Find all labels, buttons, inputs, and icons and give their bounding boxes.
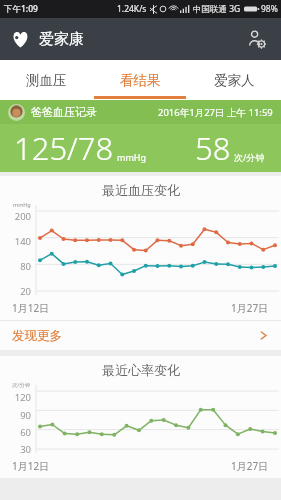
staticText: 125/78 xyxy=(14,127,114,169)
staticText: 2016年1月27日 上午 11:59 xyxy=(158,106,273,119)
staticText: 140 xyxy=(14,235,31,248)
staticText: 次/分钟 xyxy=(234,151,265,163)
button[interactable]: 测血压 xyxy=(0,60,93,100)
staticText: 1月12日 xyxy=(12,459,50,473)
staticText: mmHg xyxy=(117,151,147,163)
staticText: 90 xyxy=(20,409,31,422)
staticText: 58 xyxy=(195,127,231,169)
staticText: 120 xyxy=(14,391,31,404)
staticText: 60 xyxy=(20,426,31,439)
staticText: 爱家康 xyxy=(39,30,84,49)
staticText: 20 xyxy=(20,285,31,298)
staticText: 看结果 xyxy=(120,72,161,89)
staticText: 中国联通 3G xyxy=(193,3,241,15)
staticText: 爸爸血压记录 xyxy=(31,105,97,119)
staticText: 爱家人 xyxy=(214,72,255,89)
staticText: 发现更多 xyxy=(12,328,62,344)
staticText: 1月12日 xyxy=(12,301,50,315)
staticText: mmHg xyxy=(13,201,31,208)
staticText: 最近心率变化 xyxy=(102,362,180,378)
staticText: 80 xyxy=(20,260,31,273)
staticText: 30 xyxy=(20,443,31,456)
staticText: 1.24K/s xyxy=(117,3,147,15)
button[interactable]: 看结果 xyxy=(93,60,187,100)
staticText: 98% xyxy=(261,3,278,15)
button[interactable]: 发现更多 xyxy=(0,321,281,350)
staticText: 下午1:09 xyxy=(4,3,38,15)
staticText: 最近血压变化 xyxy=(102,182,180,198)
staticText: 测血压 xyxy=(26,72,67,89)
staticText: 200 xyxy=(14,210,31,223)
staticText: 1月27日 xyxy=(231,459,269,473)
button[interactable]: Account settings xyxy=(241,24,271,54)
staticText: 1月27日 xyxy=(231,301,269,315)
button[interactable]: 爱家人 xyxy=(187,60,281,100)
staticText: 次/分钟 xyxy=(12,381,31,389)
